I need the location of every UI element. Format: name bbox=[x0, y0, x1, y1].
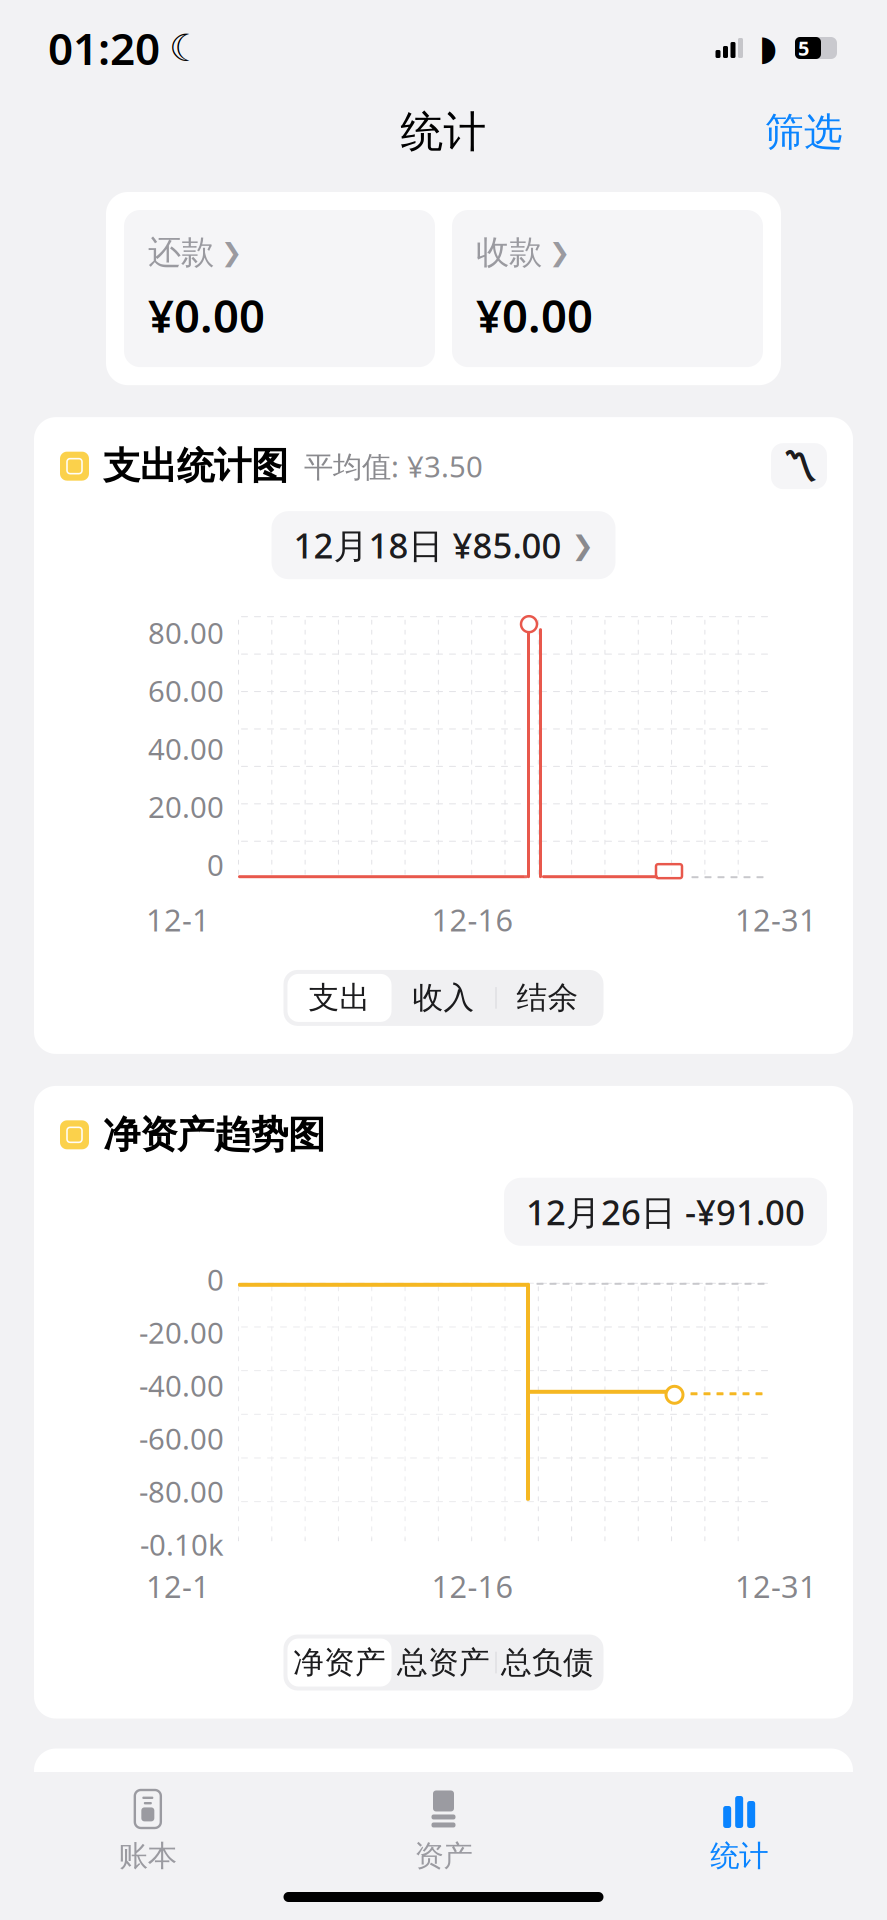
staticText: ❯ bbox=[221, 238, 242, 267]
staticText: 12-1 bbox=[146, 899, 210, 940]
staticText: ¥0.00 bbox=[148, 285, 265, 345]
staticText: -0.10k bbox=[140, 1525, 224, 1564]
staticText: 12-31 bbox=[735, 1566, 817, 1606]
staticText: 支出 bbox=[308, 979, 370, 1017]
button[interactable]: 切换图表样式 bbox=[771, 443, 827, 489]
staticText: 资产 bbox=[414, 1838, 472, 1874]
staticText: 平均值: ¥3.50 bbox=[304, 447, 483, 486]
staticText: 筛选 bbox=[765, 108, 843, 156]
staticText: 净资产趋势图 bbox=[103, 1112, 325, 1158]
staticText: 统计 bbox=[710, 1838, 768, 1874]
staticText: 12月18日 ¥85.00 bbox=[293, 522, 561, 568]
staticText: ☾ bbox=[169, 27, 202, 69]
button[interactable]: 账本 bbox=[0, 1784, 296, 1880]
staticText: -40.00 bbox=[139, 1366, 224, 1405]
staticText: 支出统计图 bbox=[103, 443, 288, 489]
button[interactable]: 12月26日 -¥91.00 bbox=[504, 1178, 827, 1246]
staticText: 5 bbox=[798, 35, 809, 61]
staticText: 一级分类 bbox=[646, 1782, 774, 1822]
staticText: 12-16 bbox=[431, 1566, 513, 1606]
staticText: 〽 bbox=[781, 449, 816, 483]
button[interactable]: 收款 bbox=[452, 210, 763, 367]
button[interactable]: 一级分类 bbox=[626, 1772, 827, 1832]
staticText: 支出分类详情 bbox=[103, 1779, 325, 1825]
staticText: 80.00 bbox=[148, 613, 224, 652]
staticText: 60.00 bbox=[148, 671, 224, 710]
button[interactable]: 支出 bbox=[287, 974, 391, 1022]
staticText: -60.00 bbox=[139, 1419, 224, 1458]
button[interactable]: 统计 bbox=[591, 1784, 887, 1880]
staticText: 12月26日 -¥91.00 bbox=[526, 1189, 805, 1235]
staticText: 4 bbox=[809, 35, 820, 61]
staticText: 收款 bbox=[476, 232, 542, 273]
staticText: 结余 bbox=[516, 979, 578, 1017]
staticText: ◗ bbox=[759, 28, 777, 68]
staticText: 总资产 bbox=[397, 1644, 490, 1681]
staticText: 12-31 bbox=[735, 899, 817, 940]
button[interactable]: 还款 bbox=[124, 210, 435, 367]
staticText: 12-1 bbox=[146, 1566, 210, 1606]
staticText: 总负债 bbox=[501, 1644, 594, 1681]
button[interactable]: 总资产 bbox=[391, 1638, 495, 1686]
staticText: 账本 bbox=[119, 1838, 177, 1874]
button[interactable]: 净资产 bbox=[287, 1638, 391, 1686]
staticText: ❯ bbox=[571, 530, 593, 560]
button[interactable]: 收入 bbox=[391, 974, 495, 1022]
button[interactable]: 12月18日 ¥85.00 bbox=[271, 511, 615, 579]
staticText: 0 bbox=[207, 845, 224, 884]
staticText: -80.00 bbox=[139, 1472, 224, 1511]
button[interactable]: 筛选 bbox=[755, 102, 853, 162]
staticText: ❯ bbox=[549, 238, 570, 267]
button[interactable]: 总负债 bbox=[495, 1638, 599, 1686]
staticText: 12-16 bbox=[431, 899, 513, 940]
staticText: 01:20 bbox=[48, 19, 160, 77]
staticText: 40.00 bbox=[148, 729, 224, 768]
button[interactable]: 结余 bbox=[495, 974, 599, 1022]
staticText: -20.00 bbox=[139, 1313, 224, 1352]
staticText: 统计 bbox=[400, 106, 486, 158]
staticText: 收入 bbox=[412, 979, 474, 1017]
staticText: 0 bbox=[207, 1260, 224, 1299]
button[interactable]: 资产 bbox=[296, 1784, 591, 1880]
staticText: ¥0.00 bbox=[476, 285, 593, 345]
staticText: 还款 bbox=[148, 232, 214, 273]
staticText: 净资产 bbox=[293, 1644, 386, 1681]
staticText: 20.00 bbox=[148, 787, 224, 826]
